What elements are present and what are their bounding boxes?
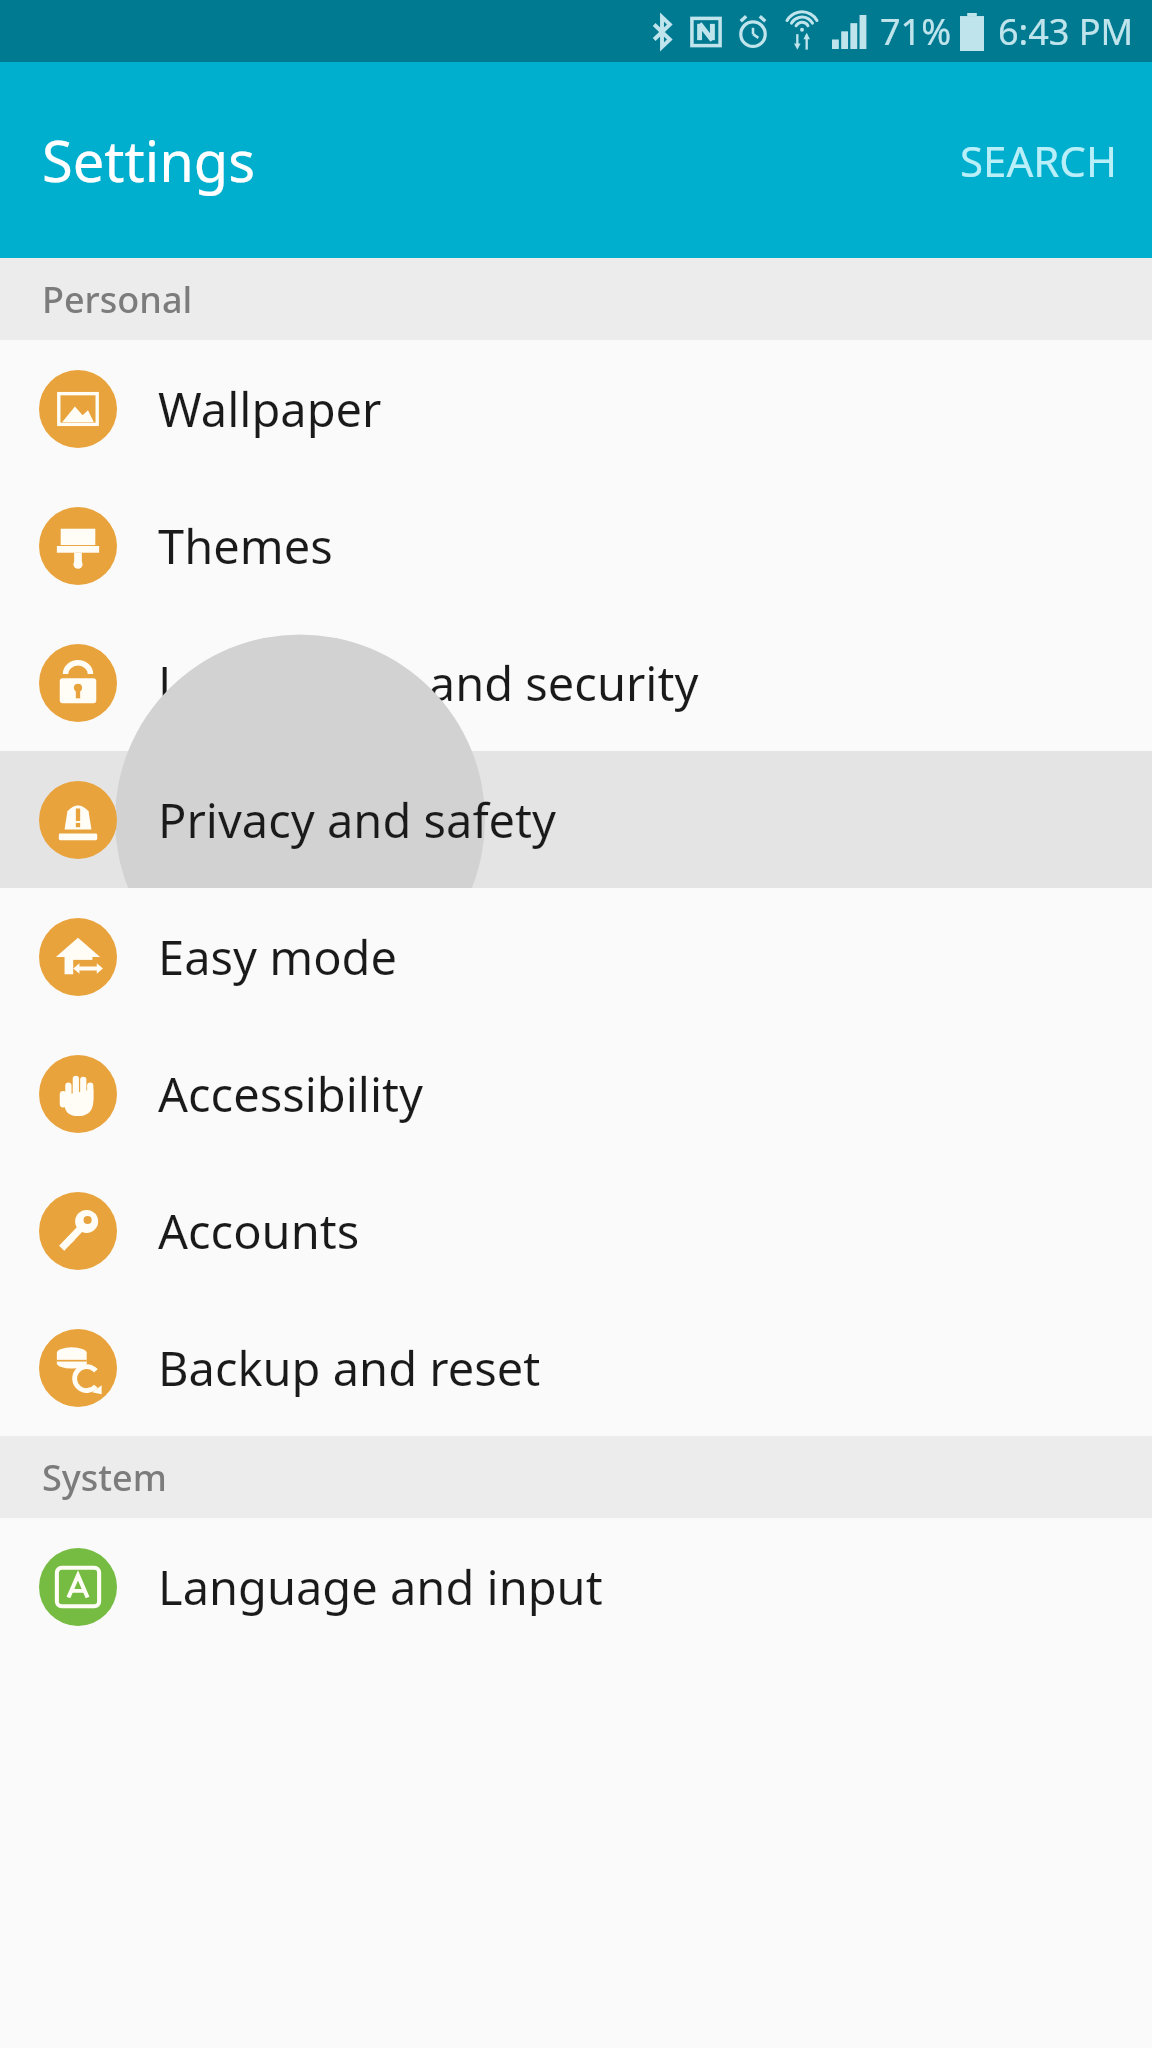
staticText: Backup and reset	[158, 1336, 541, 1400]
staticText: SEARCH	[960, 132, 1118, 189]
button[interactable]: Backup and reset	[0, 1299, 1152, 1436]
staticText: Personal	[42, 275, 193, 324]
staticText: Wallpaper	[158, 377, 382, 441]
button[interactable]: Accounts	[0, 1162, 1152, 1299]
staticText: Accounts	[158, 1199, 360, 1263]
staticText: Language and input	[158, 1555, 603, 1619]
staticText: Privacy and safety	[158, 788, 556, 852]
button[interactable]: SEARCH	[926, 92, 1152, 229]
button[interactable]: Easy mode	[0, 888, 1152, 1025]
staticText: Lock screen and security	[158, 651, 699, 715]
staticText: Themes	[158, 514, 333, 578]
staticText: 71%	[880, 7, 952, 56]
staticText: Settings	[42, 122, 256, 198]
button[interactable]: Privacy and safety	[0, 751, 1152, 888]
button[interactable]: Wallpaper	[0, 340, 1152, 477]
staticText: Accessibility	[158, 1062, 424, 1126]
staticText: 6:43 PM	[998, 7, 1134, 56]
staticText: Easy mode	[158, 925, 397, 989]
button[interactable]: Lock screen and security	[0, 614, 1152, 751]
button[interactable]: Language and input	[0, 1518, 1152, 1655]
button[interactable]: Accessibility	[0, 1025, 1152, 1162]
staticText: System	[42, 1453, 167, 1502]
button[interactable]: Themes	[0, 477, 1152, 614]
